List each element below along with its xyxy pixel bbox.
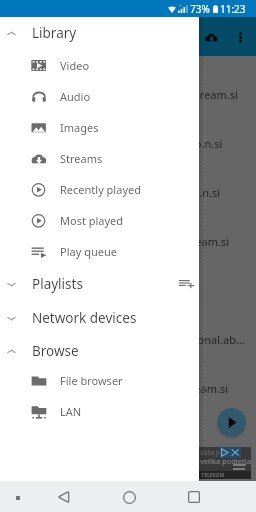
staticText: radio-robin.si: [127, 283, 196, 298]
button[interactable]: Menu: [7, 487, 28, 508]
button[interactable]: radio.mtvstream.si: [0, 80, 238, 108]
button[interactable]: Home: [116, 484, 142, 510]
button[interactable]: www.rtvslo.si/international.ab…: [0, 325, 245, 353]
button[interactable]: Play: [217, 408, 246, 437]
button[interactable]: LAN: [0, 396, 199, 427]
staticText: pop-radio.n.si: [151, 136, 223, 151]
staticText: Images: [60, 120, 99, 135]
staticText: Recently played: [60, 182, 141, 197]
button[interactable]: Library: [0, 17, 199, 49]
button[interactable]: Download: [200, 26, 222, 48]
button[interactable]: radio-kranj.n.si: [0, 178, 221, 206]
staticText: Browse: [32, 342, 79, 360]
button[interactable]: Streams: [0, 143, 199, 174]
button[interactable]: Video: [0, 50, 199, 81]
button[interactable]: Add playlist: [173, 271, 199, 297]
button[interactable]: Recents: [181, 484, 207, 510]
staticText: www.rtvslo.si/international.ab…: [81, 332, 245, 347]
button[interactable]: pop-radio.n.si: [0, 129, 223, 157]
button[interactable]: Recently played: [0, 174, 199, 205]
button[interactable]: radio-robin.si: [0, 276, 196, 304]
staticText: radiostream.si: [154, 381, 229, 396]
button[interactable]: More options: [229, 26, 251, 48]
staticText: LAN: [60, 404, 82, 419]
staticText: Library: [32, 24, 77, 42]
button[interactable]: Advertisement: [199, 447, 251, 479]
staticText: File browser: [60, 373, 123, 388]
staticText: TELEKOM: [199, 472, 224, 479]
button[interactable]: radiostream.si: [0, 374, 229, 402]
staticText: radio.stream.si: [152, 234, 229, 249]
staticText: Video: [60, 58, 90, 73]
staticText: Playlists: [32, 275, 83, 293]
staticText: Most played: [60, 213, 124, 228]
button[interactable]: Network devices: [0, 302, 199, 334]
staticText: 11:23: [220, 2, 246, 16]
staticText: Streams: [60, 151, 103, 166]
staticText: Network devices: [32, 309, 137, 327]
button[interactable]: radio.stream.si: [0, 227, 229, 255]
staticText: radio-kranj.n.si: [143, 185, 221, 200]
button[interactable]: Most played: [0, 205, 199, 236]
staticText: velika podjetja: [200, 456, 251, 466]
staticText: Audio: [60, 89, 91, 104]
button[interactable]: Playlists: [0, 268, 199, 300]
button[interactable]: Audio: [0, 81, 199, 112]
button[interactable]: File browser: [0, 365, 199, 396]
button[interactable]: Images: [0, 112, 199, 143]
button[interactable]: Back: [50, 484, 76, 510]
staticText: Vaša je: [200, 448, 222, 457]
staticText: 73%: [190, 2, 210, 16]
button[interactable]: Play queue: [0, 236, 199, 267]
button[interactable]: Browse: [0, 335, 199, 367]
staticText: radio.mtvstream.si: [141, 87, 238, 102]
staticText: Play queue: [60, 244, 117, 259]
